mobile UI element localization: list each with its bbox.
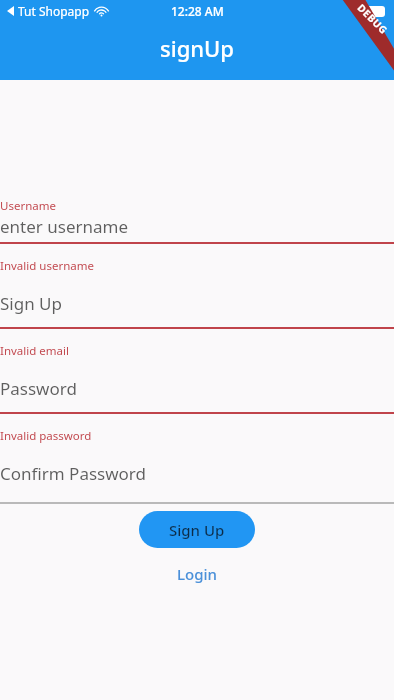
- staticText: signUp: [160, 33, 234, 63]
- staticText: Login: [177, 564, 217, 584]
- staticText: enter username: [0, 215, 129, 238]
- staticText: Sign Up: [169, 520, 225, 540]
- staticText: Invalid username: [0, 258, 94, 274]
- staticText: Tut Shopapp: [18, 3, 90, 19]
- staticText: DEBUG: [355, 1, 391, 37]
- staticText: Invalid email: [0, 343, 69, 359]
- button[interactable]: Confirm Password: [0, 460, 394, 486]
- button[interactable]: enter username: [0, 213, 394, 239]
- button[interactable]: Sign Up: [0, 290, 394, 316]
- staticText: Password: [0, 377, 77, 400]
- staticText: Sign Up: [0, 292, 62, 315]
- button[interactable]: Password: [0, 375, 394, 401]
- button[interactable]: Sign Up: [139, 511, 255, 548]
- button[interactable]: Login: [0, 562, 394, 586]
- staticText: Confirm Password: [0, 462, 146, 485]
- staticText: 12:28 AM: [171, 3, 224, 19]
- staticText: Invalid password: [0, 428, 92, 444]
- staticText: Username: [0, 198, 56, 214]
